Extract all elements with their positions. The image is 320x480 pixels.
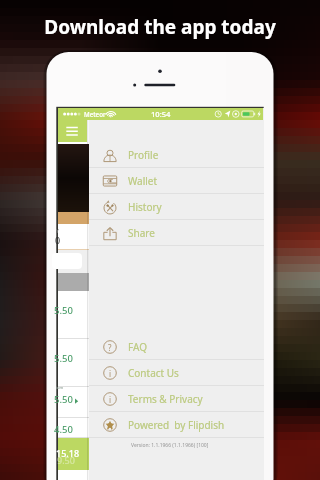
staticText: Share <box>128 226 155 240</box>
button[interactable]: Open navigation menu <box>58 120 87 142</box>
staticText: Terms & Privacy <box>128 392 203 406</box>
staticText: 9.50 <box>57 454 75 466</box>
staticText: i <box>109 368 112 379</box>
staticText: Y <box>56 228 59 235</box>
button[interactable]: i <box>89 386 264 412</box>
staticText: Version: 1.1.1966 (1.1.1966) [100] <box>131 442 209 449</box>
staticText: Wallet <box>128 174 158 188</box>
staticText: Contact Us <box>128 366 179 380</box>
button[interactable]: i <box>89 360 264 386</box>
staticText: 0 <box>55 234 61 246</box>
button[interactable]: Profile <box>89 142 264 168</box>
staticText: Download the app today <box>0 14 320 40</box>
staticText: ium <box>56 385 64 390</box>
staticText: FAQ <box>128 340 147 354</box>
staticText: 5.50 <box>54 393 73 406</box>
staticText: 5.50 <box>54 352 73 365</box>
button[interactable]: Wallet <box>89 168 264 194</box>
button[interactable]: Share <box>89 220 264 246</box>
staticText: Powered by Flipdish <box>128 418 225 432</box>
staticText: 10:54 <box>151 109 171 119</box>
staticText: 15.18 <box>56 447 80 459</box>
staticText: Meteor <box>84 110 106 118</box>
staticText: History <box>128 200 162 214</box>
button[interactable]: ? <box>89 334 264 360</box>
staticText: i <box>109 394 112 405</box>
staticText: ? <box>108 342 112 353</box>
button[interactable]: Powered by Flipdish <box>89 412 264 438</box>
button[interactable]: History <box>89 194 264 220</box>
staticText: Profile <box>128 148 159 162</box>
staticText: 4.50 <box>54 423 73 436</box>
staticText: 5.50 <box>54 304 73 317</box>
